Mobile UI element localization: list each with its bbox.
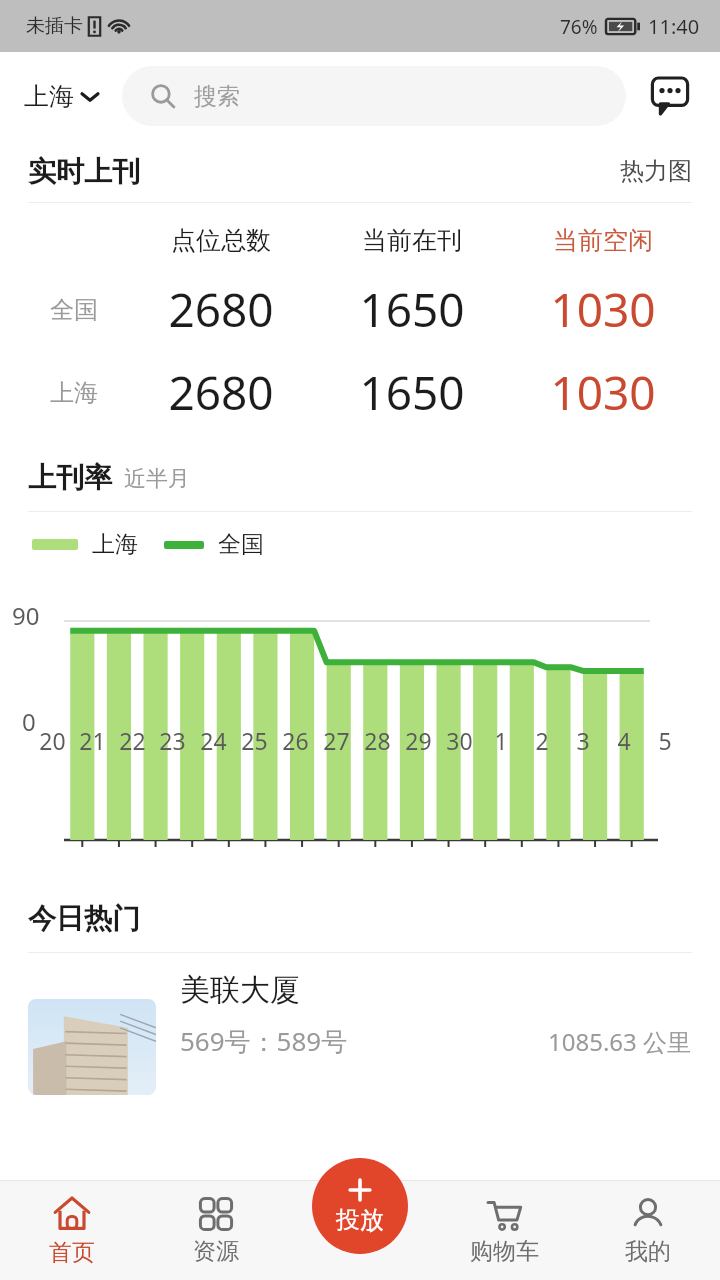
staticText: 今日热门 [28,901,140,936]
staticText: 1650 [359,361,465,424]
button[interactable]: 热力图 [620,156,692,186]
button[interactable]: 消息 [644,70,696,122]
staticText: 76% [560,14,598,40]
staticText: 首页 [49,1238,95,1267]
staticText: 搜索 [194,82,240,111]
staticText: 30 [446,725,473,756]
button[interactable]: 搜索 [122,66,626,126]
staticText: 当前在刊 [362,225,462,256]
staticText: 23 [159,725,186,756]
staticText: 28 [364,725,391,756]
staticText: 29 [405,725,432,756]
button[interactable]: 上海 [24,81,104,112]
button[interactable]: 资源 [144,1180,288,1280]
staticText: 26 [282,725,309,756]
staticText: 1030 [550,278,656,341]
staticText: 资源 [193,1237,239,1266]
button[interactable]: 美联大厦 [0,971,720,1067]
staticText: 2680 [168,278,274,341]
staticText: 25 [241,725,268,756]
staticText: 2680 [168,361,274,424]
staticText: 近半月 [124,465,190,493]
staticText: 2 [535,725,549,756]
staticText: 1030 [550,361,656,424]
staticText: 上海 [24,81,74,112]
staticText: 我的 [625,1237,671,1266]
staticText: 投放 [336,1205,384,1235]
staticText: 569号：589号 [180,1023,348,1059]
staticText: 20 [39,725,66,756]
staticText: 24 [200,725,227,756]
staticText: 90 [12,599,40,632]
staticText: 实时上刊 [28,154,140,189]
button[interactable]: 投放 [312,1158,408,1254]
staticText: 点位总数 [171,225,271,256]
staticText: 5 [658,725,672,756]
staticText: 1 [494,725,508,756]
button[interactable]: 首页 [0,1180,144,1280]
staticText: 上海 [92,530,138,559]
button[interactable]: 购物车 [432,1180,576,1280]
staticText: 上刊率 [28,460,112,495]
staticText: 11:40 [648,13,700,40]
staticText: 未插卡 [26,14,83,38]
staticText: 1085.63 公里 [548,1025,692,1058]
staticText: 0 [22,705,36,738]
staticText: 全国 [218,530,264,559]
staticText: 4 [617,725,631,756]
staticText: 1650 [359,278,465,341]
staticText: 全国 [50,295,98,325]
staticText: 当前空闲 [553,225,653,256]
staticText: 3 [576,725,590,756]
button[interactable]: 我的 [576,1180,720,1280]
staticText: 美联大厦 [180,971,300,1009]
staticText: 22 [119,725,146,756]
staticText: 购物车 [470,1237,539,1266]
staticText: 27 [323,725,350,756]
staticText: 上海 [50,378,98,408]
staticText: 21 [79,725,106,756]
